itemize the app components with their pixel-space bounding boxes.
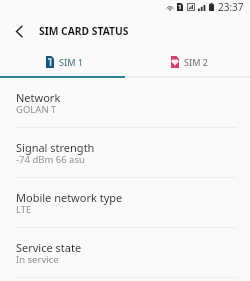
staticText: Mobile network type (16, 190, 123, 205)
button[interactable]: Back (8, 16, 30, 44)
button[interactable]: Signal strength (0, 128, 250, 178)
button[interactable]: Mobile network type (0, 178, 250, 228)
staticText: 23:37 (218, 0, 244, 14)
button[interactable]: Service state (0, 228, 250, 278)
button[interactable]: SIM 1 (0, 45, 125, 78)
staticText: Service state (16, 240, 82, 255)
staticText: -74 dBm 66 asu (16, 153, 85, 166)
staticText: LTE (16, 203, 32, 216)
staticText: SIM 2 (184, 56, 208, 68)
staticText: In service (16, 253, 59, 266)
button[interactable]: Network (0, 78, 250, 128)
staticText: SIM CARD STATUS (39, 24, 129, 38)
button[interactable]: SIM 2 (125, 45, 250, 78)
staticText: Network (16, 90, 61, 105)
staticText: GOLAN T (16, 103, 57, 116)
staticText: Signal strength (16, 140, 95, 155)
staticText: SIM 1 (59, 56, 83, 68)
